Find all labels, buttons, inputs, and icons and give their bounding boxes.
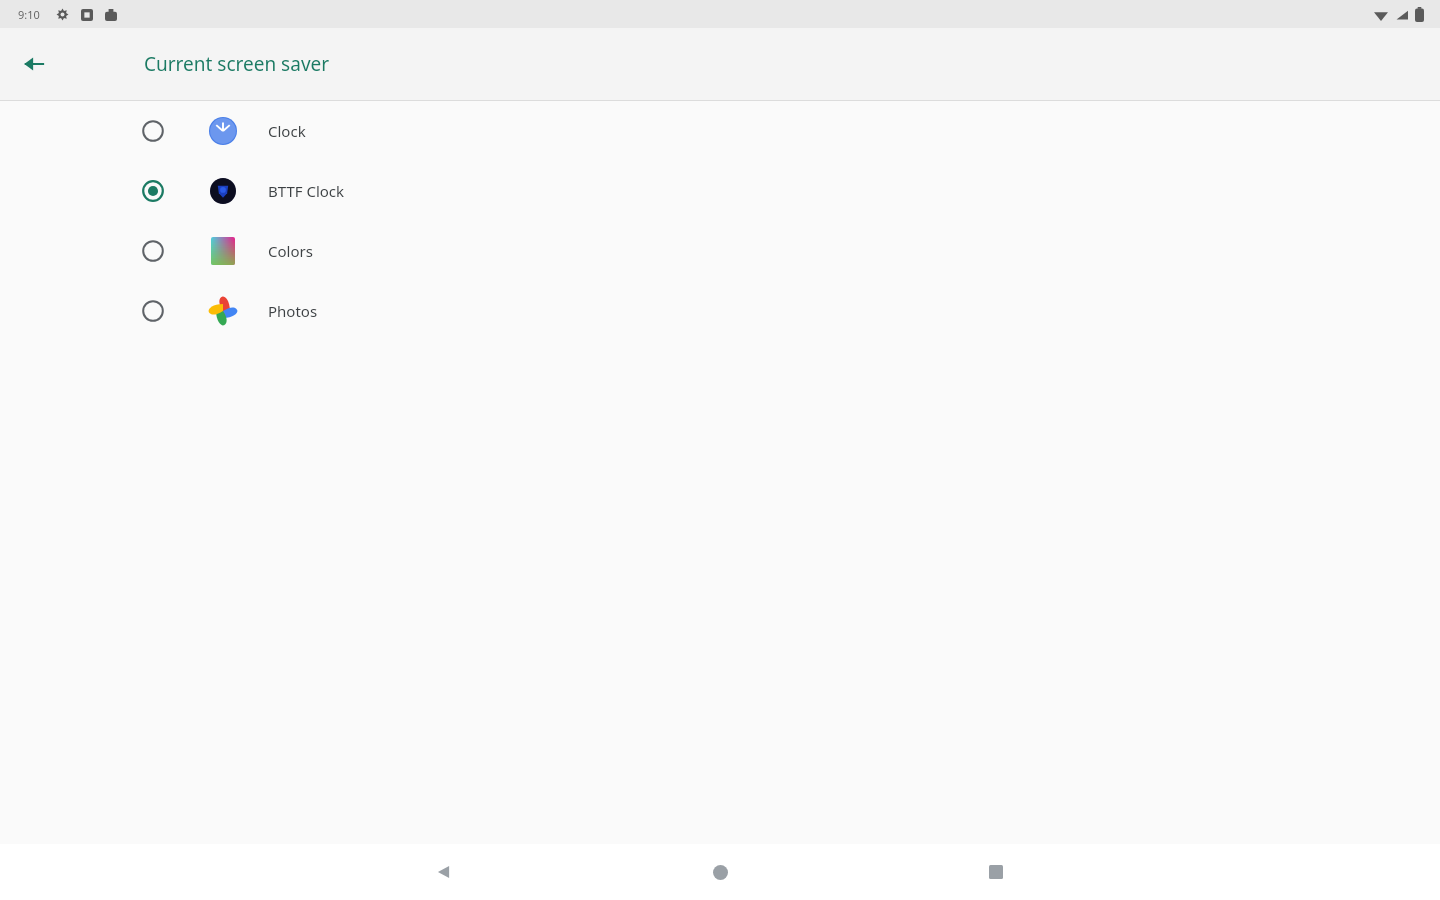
button[interactable]: Back — [420, 848, 468, 896]
button[interactable]: BTTF Clock — [0, 161, 1440, 221]
staticText: Clock — [268, 121, 306, 141]
button[interactable]: Photos — [0, 281, 1440, 341]
button[interactable]: Clock — [0, 101, 1440, 161]
button[interactable]: Back — [12, 42, 56, 86]
staticText: Photos — [268, 301, 318, 321]
button[interactable]: Colors — [0, 221, 1440, 281]
staticText: BTTF Clock — [268, 181, 345, 201]
staticText: Current screen saver — [144, 51, 330, 77]
staticText: Colors — [268, 241, 313, 261]
button[interactable]: Home — [696, 848, 744, 896]
staticText: 9:10 — [18, 7, 40, 22]
button[interactable]: Recent apps — [972, 848, 1020, 896]
